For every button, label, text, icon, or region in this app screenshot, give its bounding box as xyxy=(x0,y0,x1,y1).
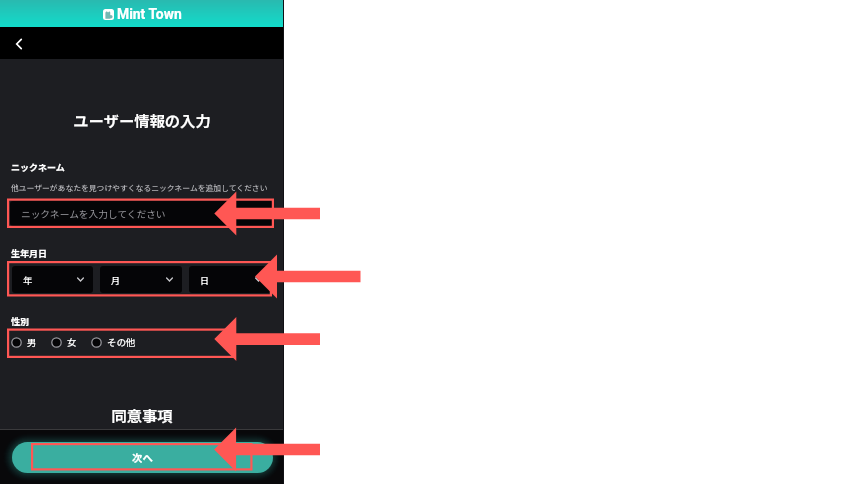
button[interactable]: 次へ xyxy=(12,442,273,473)
button[interactable]: その他 xyxy=(91,335,136,349)
button[interactable]: 月 xyxy=(100,266,182,293)
staticText: Mint Town xyxy=(117,6,182,22)
staticText: 日 xyxy=(200,274,210,287)
staticText: 他ユーザーがあなたを見つけやすくなるニックネームを追加してください xyxy=(11,182,268,193)
staticText: 年 xyxy=(23,274,33,287)
staticText: 男 xyxy=(27,335,37,349)
staticText: その他 xyxy=(107,335,136,349)
staticText: 女 xyxy=(67,335,77,349)
button[interactable]: 日 xyxy=(189,266,271,293)
button[interactable]: 年 xyxy=(12,266,93,293)
staticText: ニックネームを入力してください xyxy=(21,207,166,221)
staticText: ユーザー情報の入力 xyxy=(0,109,284,131)
staticText: 生年月日 xyxy=(11,247,48,260)
staticText: 同意事項 xyxy=(0,404,284,426)
button[interactable]: Back xyxy=(9,34,29,54)
button[interactable]: ニックネームを入力してください xyxy=(10,201,273,226)
staticText: 次へ xyxy=(132,450,153,465)
staticText: ニックネーム xyxy=(11,161,65,174)
button[interactable]: 女 xyxy=(51,335,77,349)
staticText: 性別 xyxy=(11,315,30,328)
button[interactable]: 男 xyxy=(11,335,37,349)
staticText: 月 xyxy=(111,274,121,287)
